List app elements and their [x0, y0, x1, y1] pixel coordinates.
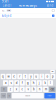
button[interactable]: p: [50, 74, 55, 79]
staticText: n: [39, 87, 41, 91]
staticText: 9:41: [2, 0, 9, 3]
staticText: b: [33, 87, 35, 91]
button[interactable]: Shift: [1, 87, 7, 92]
staticText: w: [8, 75, 10, 78]
staticText: i: [41, 75, 42, 78]
staticText: u: [35, 75, 37, 78]
staticText: d: [16, 81, 18, 85]
staticText: m: [45, 87, 47, 91]
button[interactable]: Emoji: [7, 93, 11, 98]
staticText: Subject: [2, 14, 12, 17]
staticText: j: [39, 81, 40, 85]
staticText: c: [22, 87, 23, 91]
staticText: s: [11, 81, 12, 85]
button[interactable]: space: [12, 93, 44, 98]
staticText: l: [50, 81, 51, 85]
button[interactable]: Add Contact: [52, 9, 54, 12]
button[interactable]: v: [25, 87, 31, 92]
staticText: h: [33, 81, 35, 85]
staticText: New Message: [18, 4, 37, 7]
staticText: a: [5, 81, 6, 85]
button[interactable]: Send: [45, 3, 55, 8]
button[interactable]: a: [3, 80, 8, 86]
button[interactable]: Numbers: [1, 93, 6, 98]
button[interactable]: j: [37, 80, 42, 86]
button[interactable]: d: [14, 80, 19, 86]
button[interactable]: r: [17, 74, 22, 79]
button[interactable]: l: [48, 80, 53, 86]
staticText: Kate: [7, 10, 10, 11]
staticText: g: [27, 81, 29, 85]
button[interactable]: x: [14, 87, 19, 92]
staticText: r: [19, 75, 20, 78]
button[interactable]: t: [23, 74, 28, 79]
staticText: ☺: [8, 95, 9, 96]
staticText: To:: [2, 9, 6, 12]
button[interactable]: i: [39, 74, 44, 79]
button[interactable]: w: [6, 74, 11, 79]
staticText: k: [44, 81, 45, 85]
staticText: x: [16, 87, 17, 91]
staticText: p: [52, 75, 54, 78]
staticText: ⌨: [52, 71, 54, 72]
button[interactable]: o: [45, 74, 50, 79]
staticText: e: [13, 75, 15, 78]
staticText: ⇧: [3, 88, 5, 91]
staticText: y: [30, 75, 31, 78]
staticText: 123: [2, 95, 5, 97]
button[interactable]: s: [9, 80, 13, 86]
button[interactable]: y: [28, 74, 33, 79]
staticText: +: [53, 15, 54, 17]
button[interactable]: f: [20, 80, 25, 86]
button[interactable]: q: [1, 74, 5, 79]
button[interactable]: c: [19, 87, 25, 92]
button[interactable]: m: [43, 87, 48, 92]
staticText: f: [22, 81, 23, 85]
staticText: space: [25, 95, 30, 97]
button[interactable]: return: [44, 93, 55, 98]
button[interactable]: b: [31, 87, 36, 92]
button[interactable]: k: [42, 80, 47, 86]
staticText: Cancel: [2, 4, 11, 7]
button[interactable]: Delete: [49, 87, 55, 92]
button[interactable]: Attach: [52, 14, 54, 17]
button[interactable]: n: [37, 87, 42, 92]
staticText: o: [46, 75, 48, 78]
staticText: Send: [46, 4, 53, 7]
button[interactable]: g: [25, 80, 30, 86]
button[interactable]: z: [8, 87, 13, 92]
staticText: z: [10, 87, 11, 91]
button[interactable]: u: [34, 74, 39, 79]
button[interactable]: e: [12, 74, 16, 79]
staticText: ⌫: [50, 88, 54, 91]
staticText: t: [25, 75, 26, 78]
staticText: q: [2, 75, 4, 78]
button[interactable]: Hide Keyboard: [50, 70, 55, 73]
button[interactable]: Cancel: [1, 3, 13, 8]
staticText: return: [47, 95, 52, 97]
button[interactable]: h: [31, 80, 36, 86]
